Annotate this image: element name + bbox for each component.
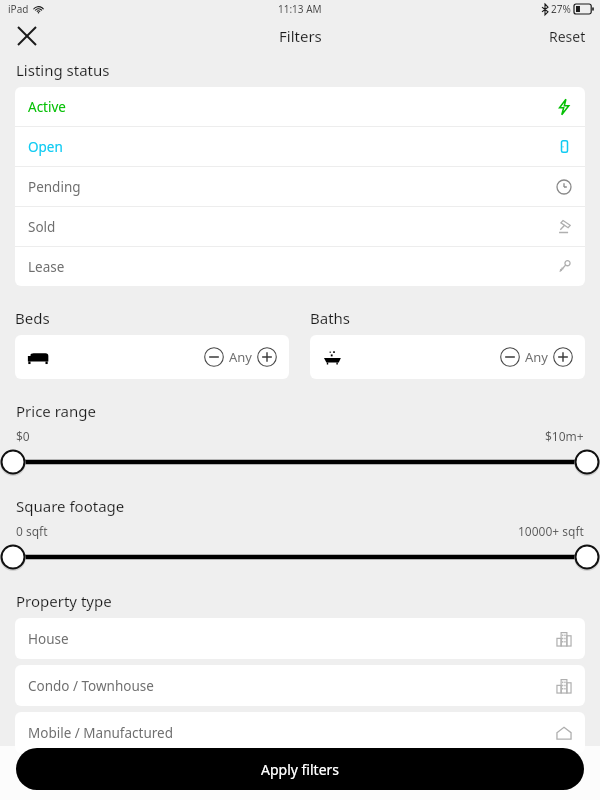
staticText: Filters xyxy=(279,26,322,46)
staticText: Baths xyxy=(310,308,351,328)
staticText: Listing status xyxy=(16,60,110,80)
staticText: Beds xyxy=(15,308,50,328)
staticText: Active xyxy=(28,98,66,116)
staticText: Any xyxy=(525,348,548,366)
staticText: iPad xyxy=(8,2,29,16)
button[interactable]: House xyxy=(15,618,585,659)
button[interactable]: Pending xyxy=(15,167,585,206)
staticText: 10000+ sqft xyxy=(518,523,584,539)
button[interactable]: Decrease xyxy=(204,347,224,367)
staticText: Property type xyxy=(16,591,112,611)
button[interactable]: Mobile / Manufactured xyxy=(15,712,585,753)
staticText: $10m+ xyxy=(545,428,584,444)
staticText: Lease xyxy=(28,258,65,276)
button[interactable]: Reset xyxy=(535,21,600,52)
button[interactable]: Sold xyxy=(15,207,585,246)
staticText: Any xyxy=(229,348,252,366)
staticText: 27% xyxy=(551,2,571,16)
staticText: Open xyxy=(28,138,63,156)
button[interactable]: Condo / Townhouse xyxy=(15,665,585,706)
staticText: Reset xyxy=(549,27,586,46)
button[interactable]: Open xyxy=(15,127,585,166)
button[interactable]: Lease xyxy=(15,247,585,286)
staticText: 11:13 AM xyxy=(278,2,322,16)
staticText: 0 sqft xyxy=(16,523,48,539)
staticText: Condo / Townhouse xyxy=(28,677,154,695)
button[interactable]: Close xyxy=(10,19,44,53)
button[interactable]: Range slider xyxy=(0,450,600,474)
staticText: Mobile / Manufactured xyxy=(28,724,173,742)
button[interactable]: Increase xyxy=(257,347,277,367)
staticText: Price range xyxy=(16,401,96,421)
staticText: Apply filters xyxy=(261,760,340,779)
staticText: House xyxy=(28,630,69,648)
staticText: $0 xyxy=(16,428,30,444)
button[interactable]: Increase xyxy=(553,347,573,367)
button[interactable]: Range slider xyxy=(0,545,600,569)
button[interactable]: Apply filters xyxy=(16,748,584,790)
button[interactable]: Decrease xyxy=(500,347,520,367)
staticText: Square footage xyxy=(16,496,125,516)
staticText: Pending xyxy=(28,178,81,196)
staticText: Sold xyxy=(28,218,56,236)
button[interactable]: Active xyxy=(15,87,585,126)
